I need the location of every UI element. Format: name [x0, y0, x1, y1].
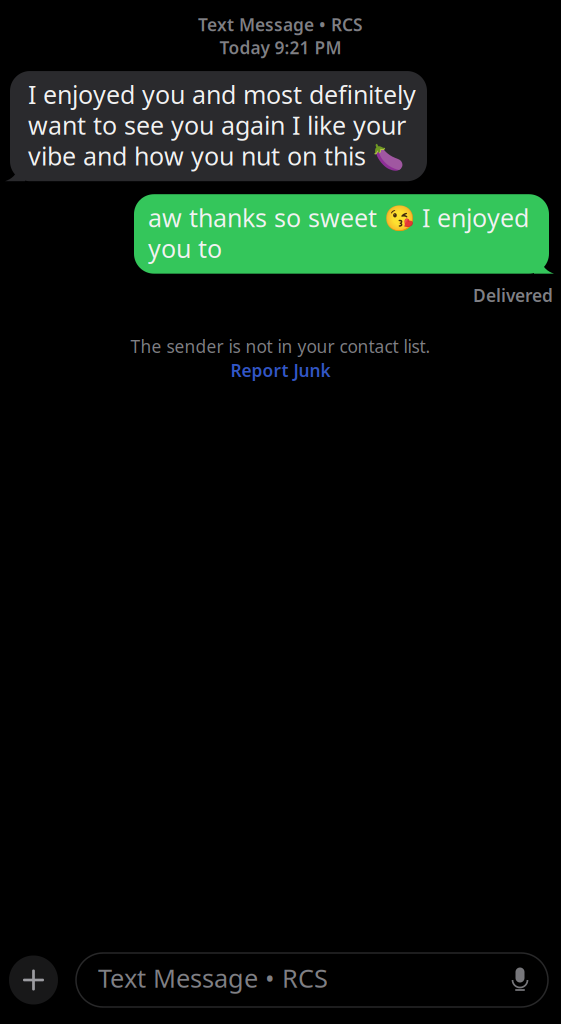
staticText: Today 9:21 PM: [219, 36, 341, 59]
button[interactable]: Text Message • RCS: [76, 953, 548, 1007]
staticText: Delivered: [473, 284, 553, 307]
staticText: The sender is not in your contact list.: [130, 335, 430, 358]
staticText: Text Message • RCS: [98, 962, 328, 994]
staticText: Report Junk: [230, 359, 330, 382]
button[interactable]: Report Junk: [230, 359, 330, 382]
button[interactable]: Add attachment: [9, 955, 58, 1004]
staticText: aw thanks so sweet 😘 I enjoyed you to: [148, 202, 529, 264]
staticText: Text Message • RCS: [198, 13, 363, 36]
staticText: I enjoyed you and most definitely want t…: [28, 79, 416, 171]
